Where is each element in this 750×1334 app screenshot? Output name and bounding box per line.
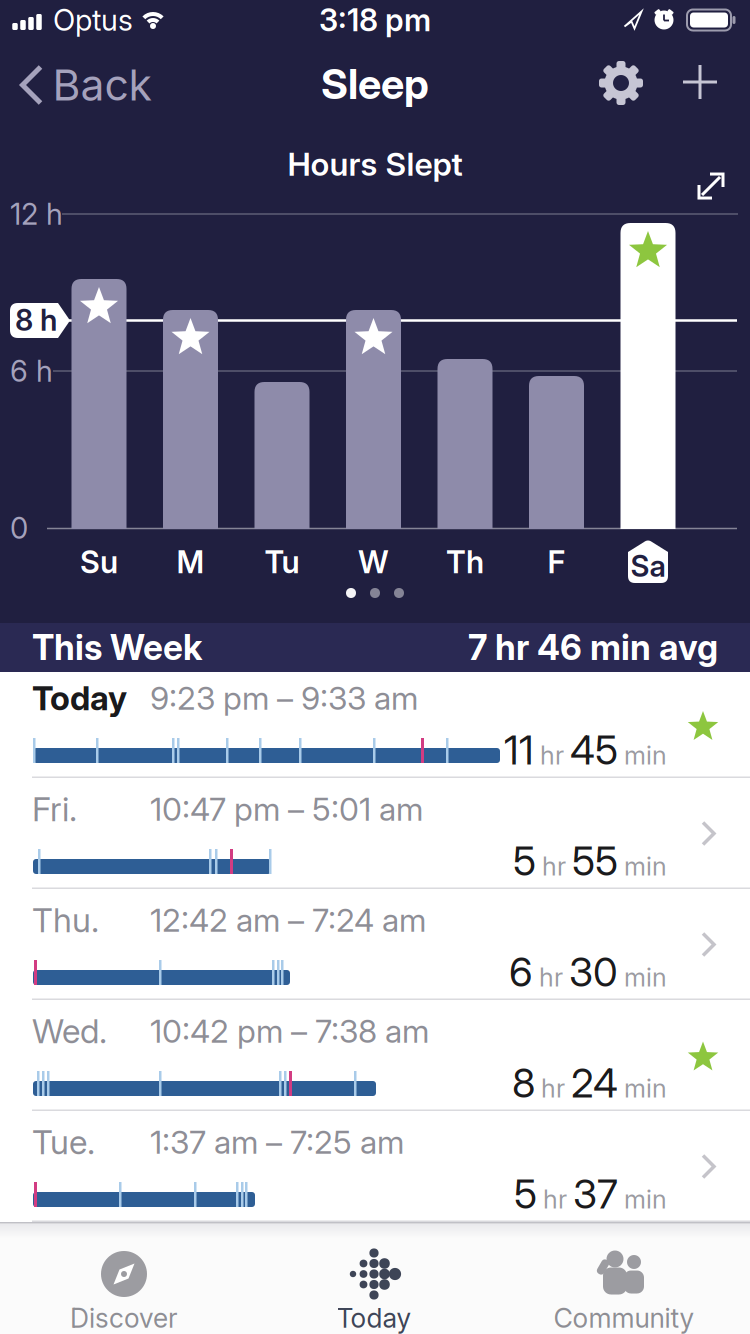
- staticText: M: [176, 544, 204, 580]
- staticText: 8: [512, 1059, 535, 1107]
- staticText: 6: [509, 948, 533, 996]
- staticText: Tu: [264, 544, 299, 580]
- staticText: 9:23 pm – 9:33 am: [150, 679, 418, 717]
- staticText: 5: [513, 837, 536, 885]
- staticText: 3:18 pm: [319, 2, 431, 38]
- staticText: hr: [542, 851, 566, 881]
- button[interactable]: Add: [678, 60, 722, 104]
- staticText: 7 hr 46 min avg: [468, 627, 718, 668]
- button[interactable]: Thu.: [0, 889, 750, 1000]
- staticText: This Week: [32, 627, 202, 668]
- staticText: Today: [336, 1302, 411, 1334]
- button[interactable]: Wed.: [0, 1000, 750, 1111]
- staticText: Community: [553, 1302, 694, 1334]
- staticText: min: [624, 740, 667, 770]
- staticText: Hours Slept: [287, 145, 462, 183]
- staticText: 30: [569, 948, 618, 996]
- staticText: 10:47 pm – 5:01 am: [150, 790, 423, 828]
- staticText: Back: [52, 60, 151, 110]
- staticText: Thu.: [32, 900, 99, 940]
- staticText: 12 h: [10, 197, 63, 231]
- staticText: 0: [10, 511, 28, 545]
- staticText: 1:37 am – 7:25 am: [150, 1123, 404, 1161]
- button[interactable]: Fri.: [0, 778, 750, 889]
- staticText: 24: [571, 1059, 618, 1107]
- staticText: W: [358, 544, 389, 580]
- staticText: hr: [543, 1184, 567, 1214]
- staticText: 12:42 am – 7:24 am: [150, 901, 426, 939]
- staticText: Sa: [630, 549, 665, 583]
- staticText: hr: [539, 962, 563, 992]
- staticText: min: [624, 1073, 667, 1103]
- button[interactable]: Today: [259, 1222, 489, 1334]
- staticText: F: [547, 544, 565, 580]
- staticText: hr: [540, 740, 564, 770]
- staticText: Optus: [53, 3, 133, 37]
- staticText: 10:42 pm – 7:38 am: [150, 1012, 429, 1050]
- staticText: hr: [541, 1073, 565, 1103]
- staticText: 6 h: [10, 354, 53, 388]
- staticText: min: [624, 962, 667, 992]
- staticText: 45: [570, 726, 618, 774]
- staticText: 37: [573, 1170, 618, 1218]
- button[interactable]: Settings: [599, 61, 643, 105]
- button[interactable]: Back: [20, 60, 151, 110]
- button[interactable]: Community: [509, 1222, 739, 1334]
- button[interactable]: Tue.: [0, 1111, 750, 1222]
- staticText: min: [624, 1184, 667, 1214]
- staticText: Today: [32, 678, 127, 718]
- button[interactable]: Discover: [9, 1222, 239, 1334]
- staticText: Sleep: [321, 60, 429, 108]
- staticText: Discover: [70, 1302, 178, 1334]
- staticText: 11: [504, 726, 534, 774]
- staticText: 55: [572, 837, 618, 885]
- staticText: Fri.: [32, 789, 77, 829]
- button[interactable]: Expand chart: [698, 173, 724, 199]
- staticText: Th: [446, 544, 484, 580]
- staticText: min: [624, 851, 667, 881]
- staticText: 5: [514, 1170, 537, 1218]
- button[interactable]: Today: [0, 672, 750, 778]
- staticText: Su: [80, 544, 118, 580]
- staticText: Tue.: [32, 1122, 95, 1162]
- staticText: Wed.: [32, 1011, 107, 1051]
- staticText: 8 h: [15, 303, 57, 337]
